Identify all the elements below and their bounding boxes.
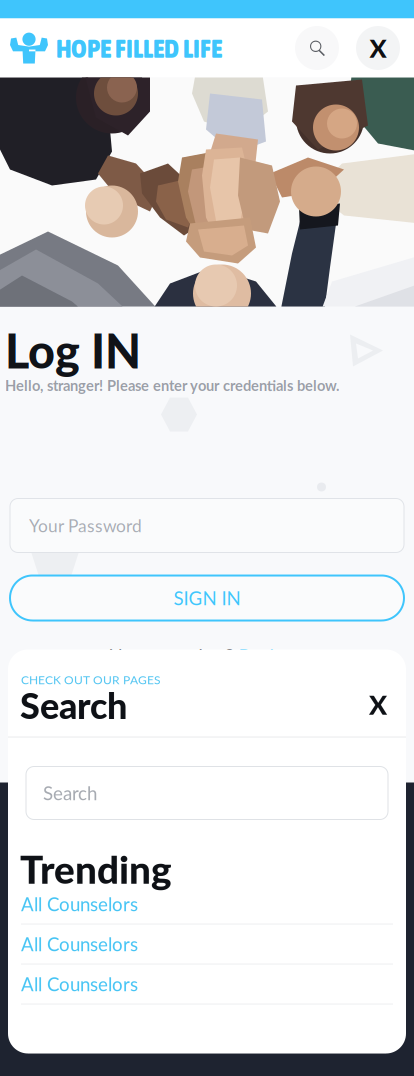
staticText: X bbox=[369, 688, 387, 720]
button[interactable]: All Counselors bbox=[21, 924, 393, 964]
staticText: Your Password bbox=[29, 515, 142, 536]
button[interactable]: HOPE FILLED LIFE bbox=[0, 32, 222, 64]
staticText: All Counselors bbox=[21, 933, 138, 955]
staticText: CHECK OUT OUR PAGES bbox=[21, 672, 161, 687]
staticText: All Counselors bbox=[21, 893, 138, 915]
button[interactable]: Register bbox=[238, 644, 305, 667]
staticText: © 2018 Copyright ASYNC DEVELOPERS bbox=[74, 971, 339, 988]
button[interactable]: Close bbox=[356, 26, 400, 70]
staticText: Search bbox=[43, 782, 97, 804]
button[interactable]: All Counselors bbox=[21, 884, 393, 924]
button[interactable]: SIGN IN bbox=[10, 575, 404, 620]
staticText: Search bbox=[20, 683, 127, 727]
staticText: X bbox=[369, 33, 386, 63]
staticText: Log IN bbox=[5, 322, 141, 378]
staticText: All Counselors bbox=[21, 973, 138, 995]
staticText: Register bbox=[238, 644, 305, 667]
button[interactable]: All Counselors bbox=[21, 964, 393, 1004]
staticText: SIGN IN bbox=[173, 587, 240, 609]
button[interactable]: Search bbox=[295, 26, 339, 70]
staticText: HOPE FILLED LIFE bbox=[56, 33, 222, 63]
button[interactable]: Close search bbox=[363, 687, 393, 721]
staticText: Hello, stranger! Please enter your crede… bbox=[5, 376, 339, 394]
staticText: Not a member? bbox=[108, 644, 233, 667]
staticText: Trending bbox=[20, 845, 172, 892]
